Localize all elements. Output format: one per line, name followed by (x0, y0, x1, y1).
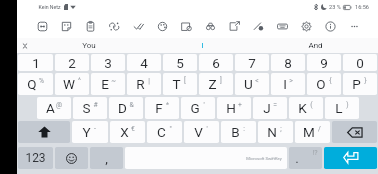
button[interactable]: P (343, 73, 377, 95)
staticText: A (46, 100, 55, 116)
staticText: E (101, 76, 109, 92)
button[interactable]: Incognito (198, 14, 222, 38)
button[interactable]: Keyboard modes (270, 14, 294, 38)
button[interactable]: X (110, 121, 145, 143)
button[interactable]: Y (72, 121, 108, 143)
staticText: H (226, 100, 236, 116)
button[interactable]: More (342, 14, 366, 38)
button[interactable]: J (253, 97, 287, 119)
staticText: ) (346, 101, 349, 109)
staticText: 8 (284, 55, 292, 71)
staticText: € (131, 125, 135, 133)
button[interactable]: N (258, 121, 293, 143)
button[interactable]: Space (125, 147, 287, 169)
button[interactable]: Q (18, 73, 53, 95)
staticText: @ (56, 101, 62, 109)
staticText: L (335, 100, 343, 116)
staticText: | (148, 77, 150, 85)
button[interactable]: 4 (127, 54, 161, 71)
button[interactable]: . (289, 147, 322, 169)
button[interactable]: C (147, 121, 182, 143)
button[interactable]: M (295, 121, 330, 143)
button[interactable] (332, 121, 377, 143)
staticText: T (172, 76, 181, 92)
button[interactable]: And (259, 38, 372, 53)
button[interactable]: Z (199, 73, 233, 95)
button[interactable]: W (55, 73, 89, 95)
button[interactable]: 1 (18, 54, 53, 71)
staticText: [ (184, 77, 186, 85)
staticText: 4 (140, 55, 148, 71)
button[interactable]: D (109, 97, 143, 119)
staticText: R (136, 76, 145, 92)
staticText: } (364, 77, 367, 85)
staticText: K (298, 100, 307, 116)
button[interactable]: H (217, 97, 251, 119)
button[interactable]: Translate (102, 14, 126, 38)
button[interactable]: G (181, 97, 215, 119)
button[interactable]: Handwriting (246, 14, 270, 38)
staticText: . (295, 150, 299, 166)
button[interactable]: F (145, 97, 179, 119)
button[interactable] (324, 147, 377, 169)
staticText: Z (208, 76, 217, 92)
staticText: N (267, 124, 277, 140)
staticText: V (194, 124, 203, 140)
button[interactable]: E (91, 73, 125, 95)
staticText: You (82, 41, 96, 50)
staticText: & (129, 101, 134, 109)
staticText: W (63, 76, 75, 92)
staticText: 6 (212, 55, 220, 71)
button[interactable]: Theme (150, 14, 174, 38)
staticText: ~ (111, 77, 116, 85)
button[interactable]: 6 (199, 54, 233, 71)
button[interactable]: Resize (222, 14, 246, 38)
button[interactable]: 9 (307, 54, 341, 71)
button[interactable]: Sticker (54, 14, 78, 38)
staticText: 7 (248, 55, 256, 71)
button[interactable]: Clipboard (78, 14, 102, 38)
button[interactable]: You (32, 38, 146, 53)
staticText: { (329, 77, 332, 85)
staticText: 16:56 (355, 4, 369, 11)
button[interactable]: I (271, 73, 305, 95)
staticText: G (190, 100, 200, 116)
button[interactable]: 2 (55, 54, 89, 71)
staticText: < (255, 77, 259, 85)
button[interactable]: L (325, 97, 359, 119)
staticText: / (318, 125, 321, 133)
button[interactable]: T (163, 73, 197, 95)
button[interactable]: 5 (163, 54, 197, 71)
staticText: O (316, 76, 326, 92)
staticText: Kein Netz (38, 4, 61, 10)
staticText: J (263, 100, 271, 116)
staticText: " (169, 125, 172, 133)
button[interactable]: K (289, 97, 323, 119)
button[interactable]: I (146, 38, 259, 53)
button[interactable]: A (37, 97, 71, 119)
button[interactable]: 0 (343, 54, 377, 71)
button[interactable]: 8 (271, 54, 305, 71)
button[interactable]: R (127, 73, 161, 95)
staticText: Y (82, 124, 91, 140)
staticText: M (303, 124, 315, 140)
button[interactable]: GIF (30, 14, 54, 38)
button[interactable]: 123 (18, 147, 53, 169)
button[interactable]: 3 (91, 54, 125, 71)
button[interactable]: Info (318, 14, 342, 38)
staticText: 9 (320, 55, 328, 71)
button[interactable]: O (307, 73, 341, 95)
button[interactable]: V (184, 121, 219, 143)
button[interactable]: Collapse (17, 38, 32, 53)
button[interactable]: 7 (235, 54, 269, 71)
staticText: P (352, 76, 361, 92)
button[interactable]: S (73, 97, 107, 119)
button[interactable]: Spell check (126, 14, 150, 38)
button[interactable]: Sticker settings (174, 14, 198, 38)
button[interactable]: U (235, 73, 269, 95)
button[interactable]: Settings (294, 14, 318, 38)
button[interactable] (18, 121, 70, 143)
button[interactable]: B (221, 121, 256, 143)
button[interactable] (55, 147, 88, 169)
button[interactable]: , (90, 147, 123, 169)
